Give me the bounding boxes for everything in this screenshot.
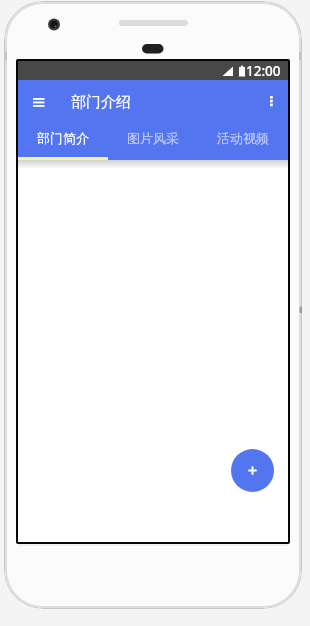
staticText: 活动视频 [217,130,269,146]
staticText: 图片风采 [127,130,179,146]
staticText: 12:00 [246,62,281,80]
button[interactable]: 图片风采 [108,122,198,160]
button[interactable]: 部门简介 [18,122,108,160]
button[interactable]: 活动视频 [198,122,288,160]
staticText: 部门介绍 [71,93,131,112]
button[interactable] [231,449,274,492]
button[interactable] [262,88,280,114]
button[interactable] [26,89,52,115]
staticText: 部门简介 [37,130,89,146]
